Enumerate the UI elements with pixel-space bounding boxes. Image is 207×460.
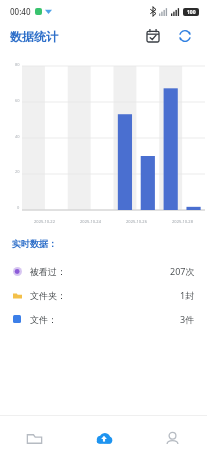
staticText: 40 <box>15 134 20 139</box>
staticText: 0 <box>17 205 20 210</box>
staticText: 数据统计 <box>10 29 58 44</box>
staticText: 20 <box>15 169 20 174</box>
staticText: 2025-10-22 <box>34 219 55 224</box>
staticText: 100 <box>187 9 196 16</box>
staticText: 80 <box>15 62 20 67</box>
button[interactable]: Files <box>0 416 69 460</box>
staticText: 2025-10-24 <box>80 219 101 224</box>
button[interactable]: Profile <box>138 416 207 460</box>
staticText: 2025-10-28 <box>172 219 193 224</box>
staticText: 2025-10-26 <box>126 219 147 224</box>
staticText: 文件夹： <box>30 290 66 301</box>
staticText: 3件 <box>180 313 195 325</box>
button[interactable]: 被看过： <box>12 259 195 283</box>
button[interactable]: Cloud <box>69 416 138 460</box>
staticText: 实时数据： <box>12 238 57 249</box>
staticText: 207次 <box>170 265 195 277</box>
staticText: 1封 <box>180 289 195 301</box>
button[interactable]: 文件夹： <box>12 283 195 307</box>
button[interactable]: Select date <box>141 24 165 48</box>
button[interactable]: Refresh <box>173 24 197 48</box>
staticText: 60 <box>15 98 20 103</box>
staticText: 00:40 <box>10 6 31 17</box>
button[interactable]: 文件： <box>12 307 195 331</box>
staticText: 被看过： <box>30 266 66 277</box>
staticText: 文件： <box>30 314 57 325</box>
